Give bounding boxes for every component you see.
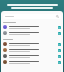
button[interactable]: Select contact bbox=[1, 24, 63, 30]
button[interactable]: Select contact bbox=[1, 30, 63, 36]
button[interactable]: Select contact bbox=[58, 49, 61, 52]
button[interactable]: Select contact bbox=[1, 47, 63, 53]
other: Search bbox=[56, 15, 59, 18]
button[interactable]: Select contact bbox=[58, 61, 61, 64]
button[interactable]: Select contact bbox=[1, 41, 63, 47]
button[interactable]: Select contact bbox=[1, 53, 63, 59]
button[interactable]: Select contact bbox=[1, 59, 63, 65]
button[interactable]: Select contact bbox=[58, 55, 61, 58]
button[interactable]: Search bbox=[3, 14, 61, 19]
button[interactable]: Select contact bbox=[58, 26, 61, 29]
button[interactable]: Select contact bbox=[58, 43, 61, 46]
button[interactable]: Select contact bbox=[58, 32, 61, 35]
